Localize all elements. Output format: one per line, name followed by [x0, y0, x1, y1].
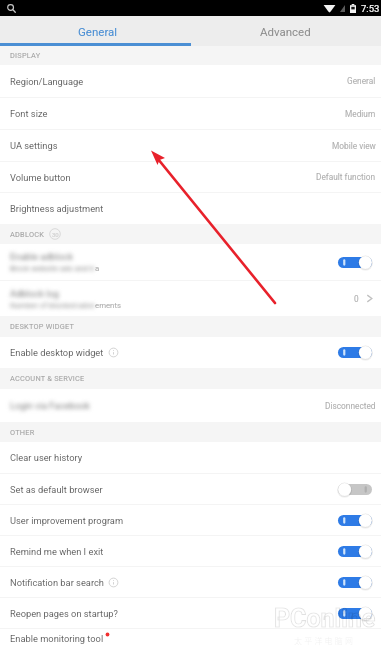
button[interactable]: Brightness adjustment	[0, 193, 381, 224]
staticText: Enable monitoring tool	[10, 633, 104, 644]
staticText: Brightness adjustment	[10, 203, 104, 214]
button[interactable]: Volume button	[0, 162, 381, 192]
staticText: DISPLAY	[10, 51, 41, 60]
button[interactable]: Adblock log	[0, 281, 381, 316]
staticText: PConline	[274, 604, 376, 633]
button[interactable]: Clear user history	[0, 442, 381, 473]
button[interactable]: Enable adblock	[0, 244, 381, 280]
staticText: Login via Facebook	[10, 400, 90, 411]
button[interactable]: UA settings	[0, 130, 381, 161]
button[interactable]: Notification bar search	[0, 567, 381, 597]
staticText: Adblock log	[10, 288, 59, 299]
button[interactable]: General	[0, 16, 190, 46]
staticText: Enable adblock	[10, 251, 73, 262]
staticText: Medium	[345, 109, 376, 119]
button[interactable]: User improvement program	[0, 505, 381, 535]
staticText: General	[347, 76, 376, 86]
button[interactable]: Region/Language	[0, 65, 381, 97]
staticText: Set as default browser	[10, 484, 103, 495]
staticText: User improvement program	[10, 515, 124, 526]
staticText: a	[95, 264, 100, 273]
staticText: Notification bar search	[10, 577, 104, 588]
button[interactable]: Advanced	[190, 16, 381, 46]
staticText: UA settings	[10, 140, 58, 151]
staticText: Volume button	[10, 172, 71, 183]
staticText: ADBLOCK	[10, 230, 45, 239]
staticText: DESKTOP WIDGET	[10, 322, 75, 331]
button[interactable]: Enable desktop widget	[0, 337, 381, 368]
staticText: Font size	[10, 108, 48, 119]
staticText: Disconnected	[325, 401, 376, 411]
button[interactable]: Remind me when I exit	[0, 536, 381, 566]
staticText: Block website ads and tr	[10, 264, 95, 273]
staticText: 30	[52, 231, 59, 238]
staticText: Remind me when I exit	[10, 546, 104, 557]
button[interactable]: Set as default browser	[0, 474, 381, 504]
staticText: ements	[95, 301, 121, 310]
staticText: General	[78, 25, 118, 38]
staticText: ACCOUNT & SERVICE	[10, 374, 85, 383]
staticText: Mobile view	[332, 141, 376, 151]
button[interactable]: Enable monitoring tool	[0, 629, 381, 648]
button[interactable]: Login via Facebook	[0, 389, 381, 422]
staticText: Advanced	[260, 25, 311, 38]
staticText: 7:53	[361, 3, 380, 14]
staticText: Reopen pages on startup?	[10, 608, 118, 619]
button[interactable]: Reopen pages on startup?	[0, 598, 381, 628]
staticText: Enable desktop widget	[10, 347, 104, 358]
staticText: Region/Language	[10, 76, 84, 87]
button[interactable]: Font size	[0, 98, 381, 129]
button[interactable]: Search	[5, 2, 17, 14]
staticText: Number of blocked adve	[10, 301, 95, 310]
staticText: 0	[354, 294, 359, 304]
staticText: OTHER	[10, 428, 35, 437]
staticText: Clear user history	[10, 452, 83, 463]
staticText: Default function	[316, 172, 376, 182]
